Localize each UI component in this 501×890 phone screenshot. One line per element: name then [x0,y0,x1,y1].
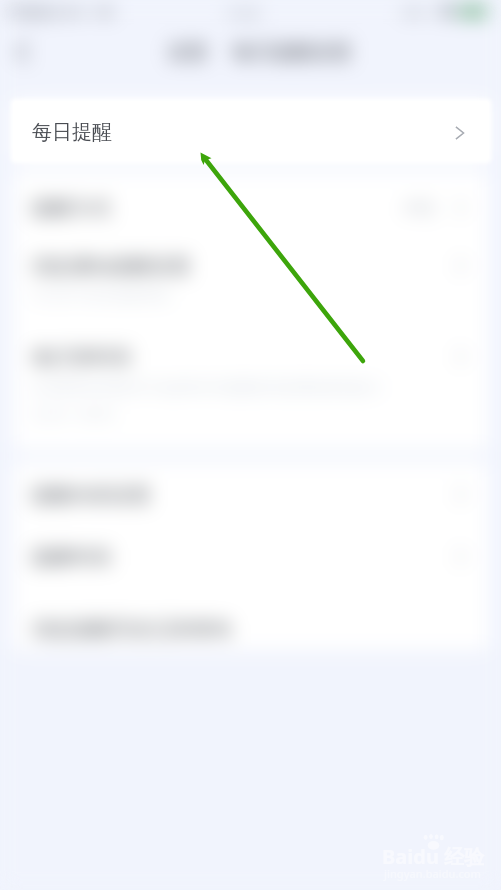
staticText: 每日提醒 [32,120,112,145]
staticText: 提醒方式 [31,196,111,221]
staticText: 每日提醒设置 [232,40,352,65]
staticText: 设置 [168,40,208,65]
button[interactable]: 每日提醒 [13,101,489,160]
staticText: 每日提醒 [31,118,111,143]
staticText: 中国移动 4G HD [5,2,115,21]
staticText: 提醒内容设置 [31,483,151,508]
staticText: 消息通知提醒设置 [31,254,191,279]
staticText: 消息提醒历史记录查询 [31,617,231,642]
staticText: 提醒时间 [31,545,111,570]
staticText: 免打扰时间 [31,345,131,370]
other: Open daily reminder [455,126,464,140]
